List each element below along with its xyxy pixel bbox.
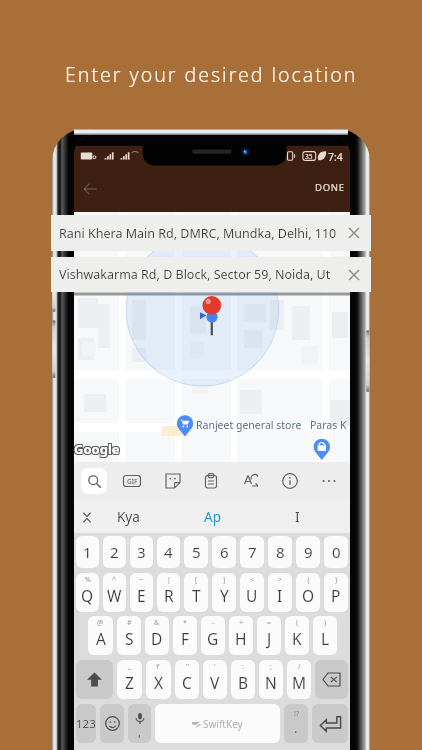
staticText: I [277,585,283,606]
button[interactable]: 9 [296,536,320,568]
button[interactable]: trans [237,467,265,495]
button[interactable]: = [257,616,281,655]
button[interactable]: Period [284,704,308,743]
button[interactable]: Rani Khera Main Rd, DMRC, Mundka, Delhi,… [51,215,371,251]
button[interactable]: - [201,616,225,655]
button[interactable]: Clear [336,257,371,292]
staticText: Google [74,439,120,457]
button[interactable]: Mic [128,704,151,743]
button[interactable]: Emoji [100,704,124,743]
button[interactable]: DONE [315,181,345,194]
staticText: R [164,585,174,606]
button[interactable]: 6 [212,536,236,568]
button[interactable]: Back [76,175,104,203]
button[interactable]: _ [117,660,142,699]
staticText: ' [214,662,216,672]
button[interactable]: 7 [240,536,264,568]
staticText: C [182,672,192,693]
button[interactable]: + [229,616,253,655]
button[interactable]: / [287,660,311,699]
staticText: + [239,618,244,628]
staticText: " [186,662,189,672]
staticText: S [125,628,134,649]
staticText: Ranjeet general store [196,418,302,432]
button[interactable]: clip [197,467,225,495]
button[interactable]: Ap [170,500,255,533]
staticText: [ [195,575,198,585]
staticText: T [192,585,201,606]
button[interactable]: Backspace [315,660,348,699]
button[interactable]: more [315,467,343,495]
button[interactable]: & [145,616,169,655]
button[interactable]: ^ [103,573,126,612]
button[interactable]: : [231,660,255,699]
staticText: N [265,672,277,693]
button[interactable]: ~ [130,573,153,612]
staticText: L [321,628,330,649]
button[interactable]: gif [118,467,146,495]
button[interactable]: info [276,467,304,495]
staticText: # [127,618,132,628]
staticText: } [335,575,338,585]
button[interactable]: ' [203,660,227,699]
button[interactable]: Clear [336,215,371,251]
button[interactable]: % [76,573,99,612]
button[interactable]: sticker [159,467,187,495]
button[interactable]: * [173,616,197,655]
button[interactable]: 123 [76,704,96,743]
button[interactable]: Space [155,704,280,743]
staticText: 5 [192,542,201,562]
button[interactable]: Kya [86,500,170,533]
staticText: Enter your desired location [65,61,358,88]
staticText: Google [74,441,119,459]
staticText: 7 [248,542,257,562]
button[interactable]: ) [313,616,337,655]
button[interactable]: 0 [324,536,348,568]
button[interactable]: 2 [103,536,126,568]
button[interactable]: 1 [76,536,99,568]
button[interactable]: } [324,573,348,612]
staticText: Google [75,439,121,457]
button[interactable]: Shift [76,660,113,699]
button[interactable]: Vishwakarma Rd, D Block, Sector 59, Noid… [51,257,371,292]
staticText: = [267,618,272,628]
button[interactable]: 4 [157,536,180,568]
button[interactable]: Search [81,468,107,494]
button[interactable]: [ [184,573,208,612]
staticText: B [238,672,249,693]
button[interactable]: < [240,573,264,612]
button[interactable]: ( [285,616,309,655]
button[interactable]: 5 [184,536,208,568]
staticText: K [292,628,302,649]
staticText: . [294,719,298,737]
button[interactable]: | [157,573,180,612]
button[interactable]: Collapse [76,506,98,528]
button[interactable]: " [175,660,199,699]
button[interactable]: ₹ [146,660,171,699]
staticText: A [96,628,106,649]
button[interactable]: 3 [130,536,153,568]
staticText: Google [75,440,121,458]
button[interactable]: { [296,573,320,612]
staticText: { [307,575,310,585]
staticText: W [107,585,122,606]
button[interactable]: Enter [312,704,348,743]
button[interactable]: ; [259,660,283,699]
staticText: ₹ [156,662,161,672]
staticText: Google [74,441,120,459]
staticText: _ [128,662,132,672]
staticText: 8 [276,542,285,562]
button[interactable]: ] [212,573,236,612]
button[interactable]: > [268,573,292,612]
staticText: Y [220,585,229,606]
button[interactable]: 8 [268,536,292,568]
staticText: Google [75,441,121,459]
staticText: > [278,575,283,585]
staticText: F [181,628,190,649]
button[interactable]: @ [88,616,113,655]
button[interactable]: # [117,616,141,655]
staticText: SwiftKey [203,717,243,731]
button[interactable]: I [255,500,340,533]
staticText: % [85,575,91,585]
staticText: P [331,585,341,606]
